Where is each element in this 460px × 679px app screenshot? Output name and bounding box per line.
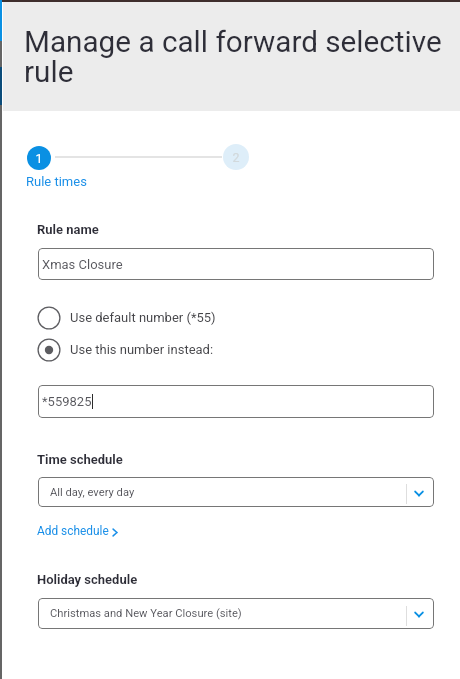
staticText: Add schedule [37,524,109,538]
button[interactable]: 1 [27,146,51,170]
staticText: Manage a call forward selective [24,24,442,59]
staticText: Xmas Closure [42,257,123,272]
button[interactable]: Use default number (*55) [37,306,216,330]
staticText: rule [24,54,74,89]
button[interactable]: All day, every day [38,477,434,507]
button[interactable]: Use this number instead: [37,338,214,362]
button[interactable]: Add schedule [37,524,118,538]
other: Open menu [407,477,434,507]
staticText: All day, every day [50,486,135,499]
button[interactable]: 2 [223,144,249,170]
staticText: *559825 [42,394,92,409]
button[interactable]: Rule times [26,174,87,189]
button[interactable]: *559825 [38,385,434,418]
staticText: Time schedule [37,452,123,467]
staticText: Use this number instead: [70,342,214,357]
staticText: 1 [35,151,43,166]
button[interactable]: Xmas Closure [38,248,434,280]
staticText: Christmas and New Year Closure (site) [50,607,242,620]
staticText: Rule name [37,222,99,237]
staticText: 2 [232,150,240,165]
staticText: Holiday schedule [37,572,138,587]
button[interactable]: Christmas and New Year Closure (site) [38,598,434,629]
other: Open menu [407,598,434,629]
staticText: Rule times [26,174,87,189]
staticText: Use default number (*55) [70,310,216,325]
